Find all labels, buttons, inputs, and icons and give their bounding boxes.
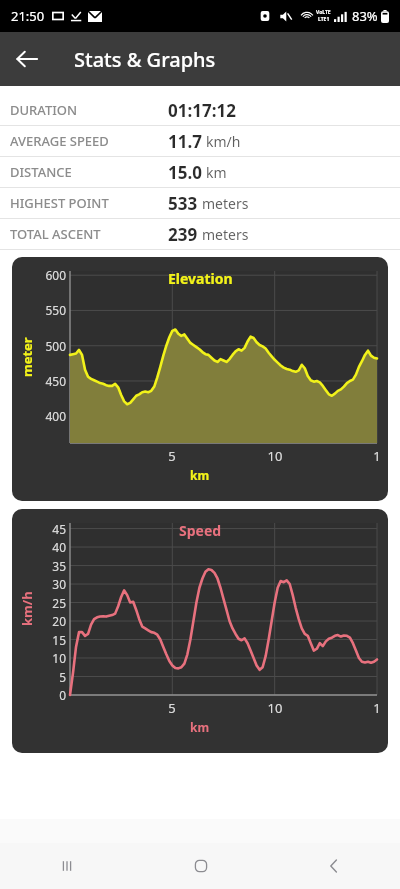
staticText: 15: [28, 632, 66, 648]
button[interactable]: 400: [12, 257, 388, 501]
staticText: 533: [168, 192, 198, 215]
staticText: AVERAGE SPEED: [10, 132, 168, 150]
staticText: HIGHEST POINT: [10, 194, 168, 212]
staticText: 400: [28, 408, 66, 424]
button[interactable]: Home: [134, 843, 267, 889]
staticText: meters: [202, 194, 249, 213]
button[interactable]: TOTAL ASCENT: [0, 219, 400, 250]
staticText: 21:50: [11, 7, 45, 25]
staticText: 35: [28, 558, 66, 574]
staticText: VoLTE: [316, 9, 331, 16]
staticText: km/h: [18, 591, 36, 626]
staticText: DURATION: [10, 101, 168, 119]
staticText: 30: [28, 576, 66, 592]
staticText: km/h: [206, 132, 241, 151]
staticText: LTE1: [318, 16, 330, 23]
staticText: Stats & Graphs: [74, 46, 216, 73]
button[interactable]: DURATION: [0, 95, 400, 126]
button[interactable]: Back: [0, 32, 54, 86]
staticText: 239: [168, 223, 198, 246]
staticText: 0: [28, 687, 66, 703]
button[interactable]: 0: [12, 509, 388, 753]
staticText: TOTAL ASCENT: [10, 225, 168, 243]
staticText: km: [206, 163, 227, 182]
staticText: DISTANCE: [10, 163, 168, 181]
staticText: 10: [261, 699, 289, 717]
staticText: 1: [363, 699, 388, 717]
button[interactable]: Recent apps: [0, 843, 134, 889]
staticText: 1: [363, 447, 388, 465]
button[interactable]: AVERAGE SPEED: [0, 126, 400, 157]
staticText: 5: [158, 699, 186, 717]
staticText: 40: [28, 539, 66, 555]
staticText: 15.0: [168, 161, 202, 184]
staticText: 450: [28, 373, 66, 389]
staticText: Elevation: [168, 269, 233, 288]
staticText: Speed: [179, 521, 222, 540]
staticText: 83%: [352, 7, 378, 25]
staticText: 5: [28, 669, 66, 685]
staticText: km: [190, 467, 210, 483]
button[interactable]: DISTANCE: [0, 157, 400, 188]
button[interactable]: HIGHEST POINT: [0, 188, 400, 219]
staticText: 5: [158, 447, 186, 465]
staticText: 500: [28, 338, 66, 354]
staticText: meters: [202, 225, 249, 244]
staticText: meter: [18, 337, 36, 377]
staticText: km: [190, 719, 210, 735]
staticText: 20: [28, 613, 66, 629]
staticText: 01:17:12: [168, 99, 236, 122]
staticText: 25: [28, 595, 66, 611]
staticText: 45: [28, 521, 66, 537]
staticText: 11.7: [168, 130, 202, 153]
staticText: 550: [28, 302, 66, 318]
staticText: 10: [28, 650, 66, 666]
staticText: 600: [28, 267, 66, 283]
button[interactable]: Back: [267, 843, 400, 889]
staticText: 10: [261, 447, 289, 465]
